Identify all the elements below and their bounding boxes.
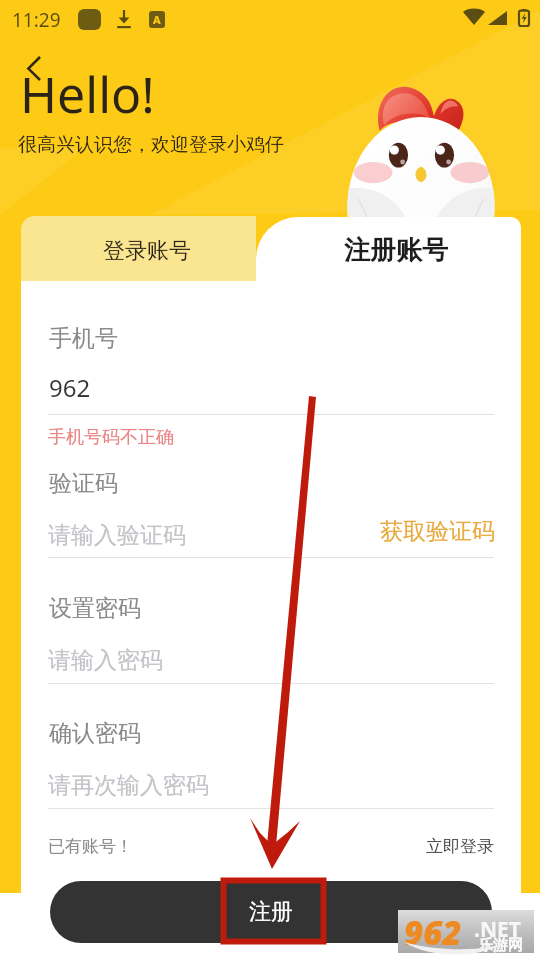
staticText: 请输入密码 bbox=[48, 646, 163, 675]
staticText: 立即登录 bbox=[426, 836, 494, 857]
staticText: .NET bbox=[474, 915, 521, 944]
staticText: 确认密码 bbox=[49, 719, 141, 748]
staticText: A bbox=[153, 12, 161, 27]
staticText: 11:29 bbox=[12, 7, 61, 33]
staticText: 962 bbox=[404, 910, 462, 953]
staticText: 注册 bbox=[249, 898, 293, 926]
staticText: 获取验证码 bbox=[380, 517, 495, 546]
button[interactable]: 立即登录 bbox=[426, 836, 494, 857]
button[interactable]: 注册账号 bbox=[271, 217, 521, 283]
staticText: 请输入验证码 bbox=[48, 521, 186, 550]
staticText: 请再次输入密码 bbox=[48, 771, 209, 800]
staticText: 注册账号 bbox=[344, 234, 448, 267]
staticText: Hello! bbox=[20, 60, 155, 128]
staticText: 很高兴认识您，欢迎登录小鸡仔 bbox=[18, 133, 284, 157]
button[interactable]: 注册 bbox=[50, 881, 492, 943]
staticText: 手机号 bbox=[49, 324, 118, 353]
staticText: 乐游网 bbox=[478, 936, 523, 955]
button[interactable]: Back bbox=[16, 45, 56, 85]
staticText: 已有账号！ bbox=[48, 836, 133, 857]
staticText: 手机号码不正确 bbox=[48, 426, 174, 449]
staticText: 设置密码 bbox=[49, 594, 141, 623]
button[interactable]: 登录账号 bbox=[21, 216, 256, 282]
staticText: 962 bbox=[49, 371, 91, 404]
staticText: 验证码 bbox=[49, 469, 118, 498]
staticText: 登录账号 bbox=[103, 237, 191, 265]
button[interactable]: 获取验证码 bbox=[380, 517, 495, 546]
